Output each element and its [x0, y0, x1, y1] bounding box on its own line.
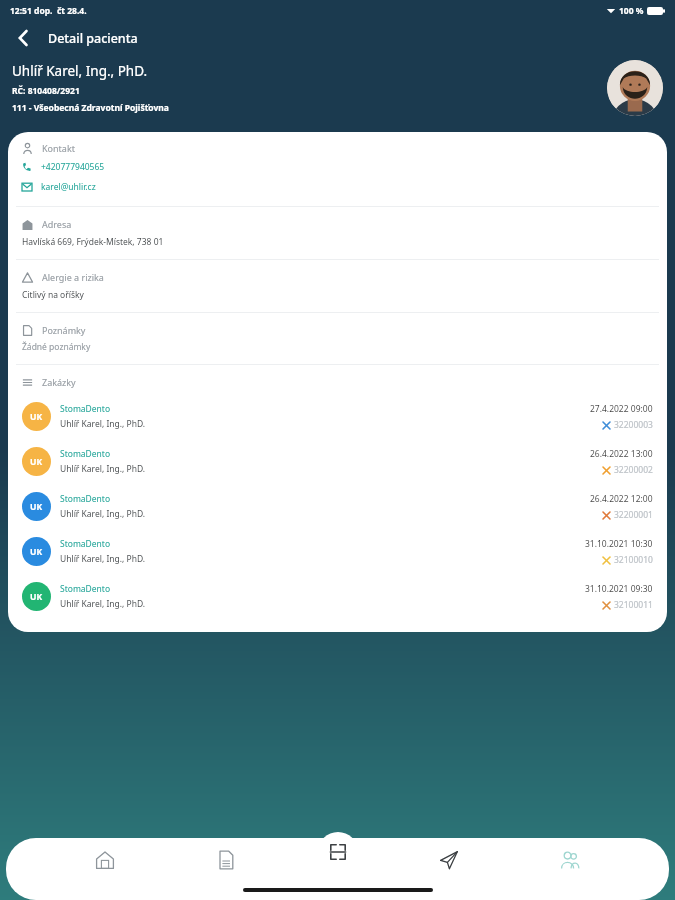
staticText: Adresa	[42, 218, 72, 230]
staticText: Detail pacienta	[48, 30, 138, 47]
staticText: 27.4.2022 09:00	[590, 403, 653, 415]
button[interactable]: UK	[22, 529, 653, 574]
button[interactable]: Scan	[318, 832, 358, 872]
staticText: 32100011	[614, 599, 653, 611]
button[interactable]: Patients	[548, 838, 592, 882]
button[interactable]: Back	[8, 22, 40, 54]
staticText: Uhlíř Karel, Ing., PhD.	[60, 598, 146, 610]
button[interactable]: UK	[22, 439, 653, 484]
staticText: RČ: 810408/2921	[12, 85, 80, 97]
staticText: 12:51 dop. čt 28.4.	[10, 5, 87, 17]
button[interactable]: Home	[83, 838, 127, 882]
staticText: 26.4.2022 13:00	[590, 448, 653, 460]
staticText: Uhlíř Karel, Ing., PhD.	[60, 508, 146, 520]
button[interactable]: UK	[22, 574, 653, 619]
staticText: 32200003	[614, 419, 653, 431]
staticText: StomaDento	[60, 403, 111, 415]
staticText: Uhlíř Karel, Ing., PhD.	[12, 62, 148, 80]
staticText: +420777940565	[41, 161, 105, 173]
staticText: 32100010	[614, 554, 653, 566]
button[interactable]: Patient photo	[607, 60, 663, 116]
staticText: StomaDento	[60, 538, 111, 550]
staticText: 31.10.2021 09:30	[585, 583, 653, 595]
staticText: UK	[30, 591, 43, 603]
staticText: Uhlíř Karel, Ing., PhD.	[60, 463, 146, 475]
staticText: Alergie a rizika	[42, 271, 104, 283]
staticText: UK	[30, 501, 43, 513]
staticText: 111 - Všeobecná Zdravotní Pojišťovna	[12, 102, 169, 114]
staticText: Uhlíř Karel, Ing., PhD.	[60, 418, 146, 430]
staticText: 26.4.2022 12:00	[590, 493, 653, 505]
staticText: Zakázky	[42, 376, 76, 388]
button[interactable]: Send	[427, 838, 471, 882]
staticText: StomaDento	[60, 448, 111, 460]
staticText: UK	[30, 411, 43, 423]
button[interactable]: Documents	[204, 838, 248, 882]
staticText: Citlivý na oříšky	[22, 289, 84, 301]
button[interactable]: UK	[22, 484, 653, 529]
staticText: 31.10.2021 10:30	[585, 538, 653, 550]
button[interactable]: UK	[22, 394, 653, 439]
staticText: Poznámky	[42, 324, 86, 336]
staticText: 32200001	[614, 509, 653, 521]
staticText: 32200002	[614, 464, 653, 476]
staticText: StomaDento	[60, 493, 111, 505]
staticText: UK	[30, 546, 43, 558]
button[interactable]: +420777940565	[22, 161, 667, 173]
staticText: UK	[30, 456, 43, 468]
staticText: 100 %	[619, 5, 644, 17]
staticText: Uhlíř Karel, Ing., PhD.	[60, 553, 146, 565]
staticText: Havlíská 669, Frýdek-Místek, 738 01	[22, 236, 164, 248]
staticText: karel@uhlir.cz	[41, 181, 96, 193]
staticText: Žádné poznámky	[22, 341, 91, 353]
staticText: Kontakt	[42, 142, 75, 154]
staticText: StomaDento	[60, 583, 111, 595]
button[interactable]: karel@uhlir.cz	[22, 181, 667, 193]
